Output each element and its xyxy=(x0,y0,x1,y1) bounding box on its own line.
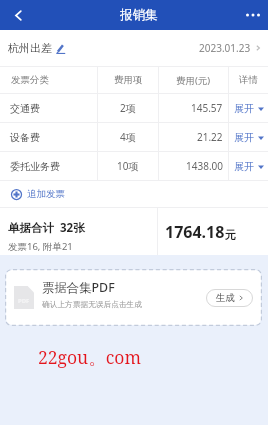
button[interactable]: 展开 xyxy=(229,123,268,151)
staticText: 2023.01.23 xyxy=(199,41,251,55)
button[interactable]: Back xyxy=(0,0,36,30)
staticText: 杭州出差 xyxy=(8,41,52,55)
staticText: 报销集 xyxy=(120,7,158,23)
staticText: 生成 xyxy=(216,292,235,304)
staticText: 详情 xyxy=(239,74,258,86)
staticText: 21.22 xyxy=(197,130,223,144)
button[interactable]: 展开 xyxy=(229,94,268,122)
staticText: 展开 xyxy=(234,160,254,173)
staticText: 展开 xyxy=(234,102,254,115)
staticText: 2项 xyxy=(120,101,136,115)
staticText: PDF xyxy=(18,297,30,305)
button[interactable]: 展开 xyxy=(229,152,268,180)
staticText: 委托业务费 xyxy=(10,160,60,173)
staticText: 4项 xyxy=(120,130,136,144)
button[interactable]: More options xyxy=(238,0,268,30)
staticText: 发票16, 附单21 xyxy=(8,240,73,253)
staticText: 发票分类 xyxy=(11,74,49,86)
staticText: 10项 xyxy=(117,159,139,173)
staticText: 元 xyxy=(225,228,236,242)
staticText: 展开 xyxy=(234,131,254,144)
staticText: 22gou。com xyxy=(38,345,141,369)
staticText: 费用项 xyxy=(114,74,143,86)
button[interactable]: 杭州出差 xyxy=(8,41,66,55)
button[interactable]: 生成 xyxy=(206,289,253,307)
staticText: 1438.00 xyxy=(186,159,223,173)
button[interactable]: 2023.01.23 xyxy=(199,41,268,55)
staticText: 票据合集PDF xyxy=(42,279,115,296)
staticText: 1764.18 xyxy=(165,221,225,243)
staticText: 145.57 xyxy=(191,101,223,115)
staticText: 追加发票 xyxy=(27,188,65,200)
button[interactable]: 追加发票 xyxy=(0,181,268,207)
staticText: 确认上方票据无误后点击生成 xyxy=(42,300,142,310)
staticText: 单据合计 32张 xyxy=(8,220,85,236)
staticText: 费用(元) xyxy=(176,74,211,87)
staticText: 设备费 xyxy=(10,131,40,144)
staticText: 交通费 xyxy=(10,102,40,115)
